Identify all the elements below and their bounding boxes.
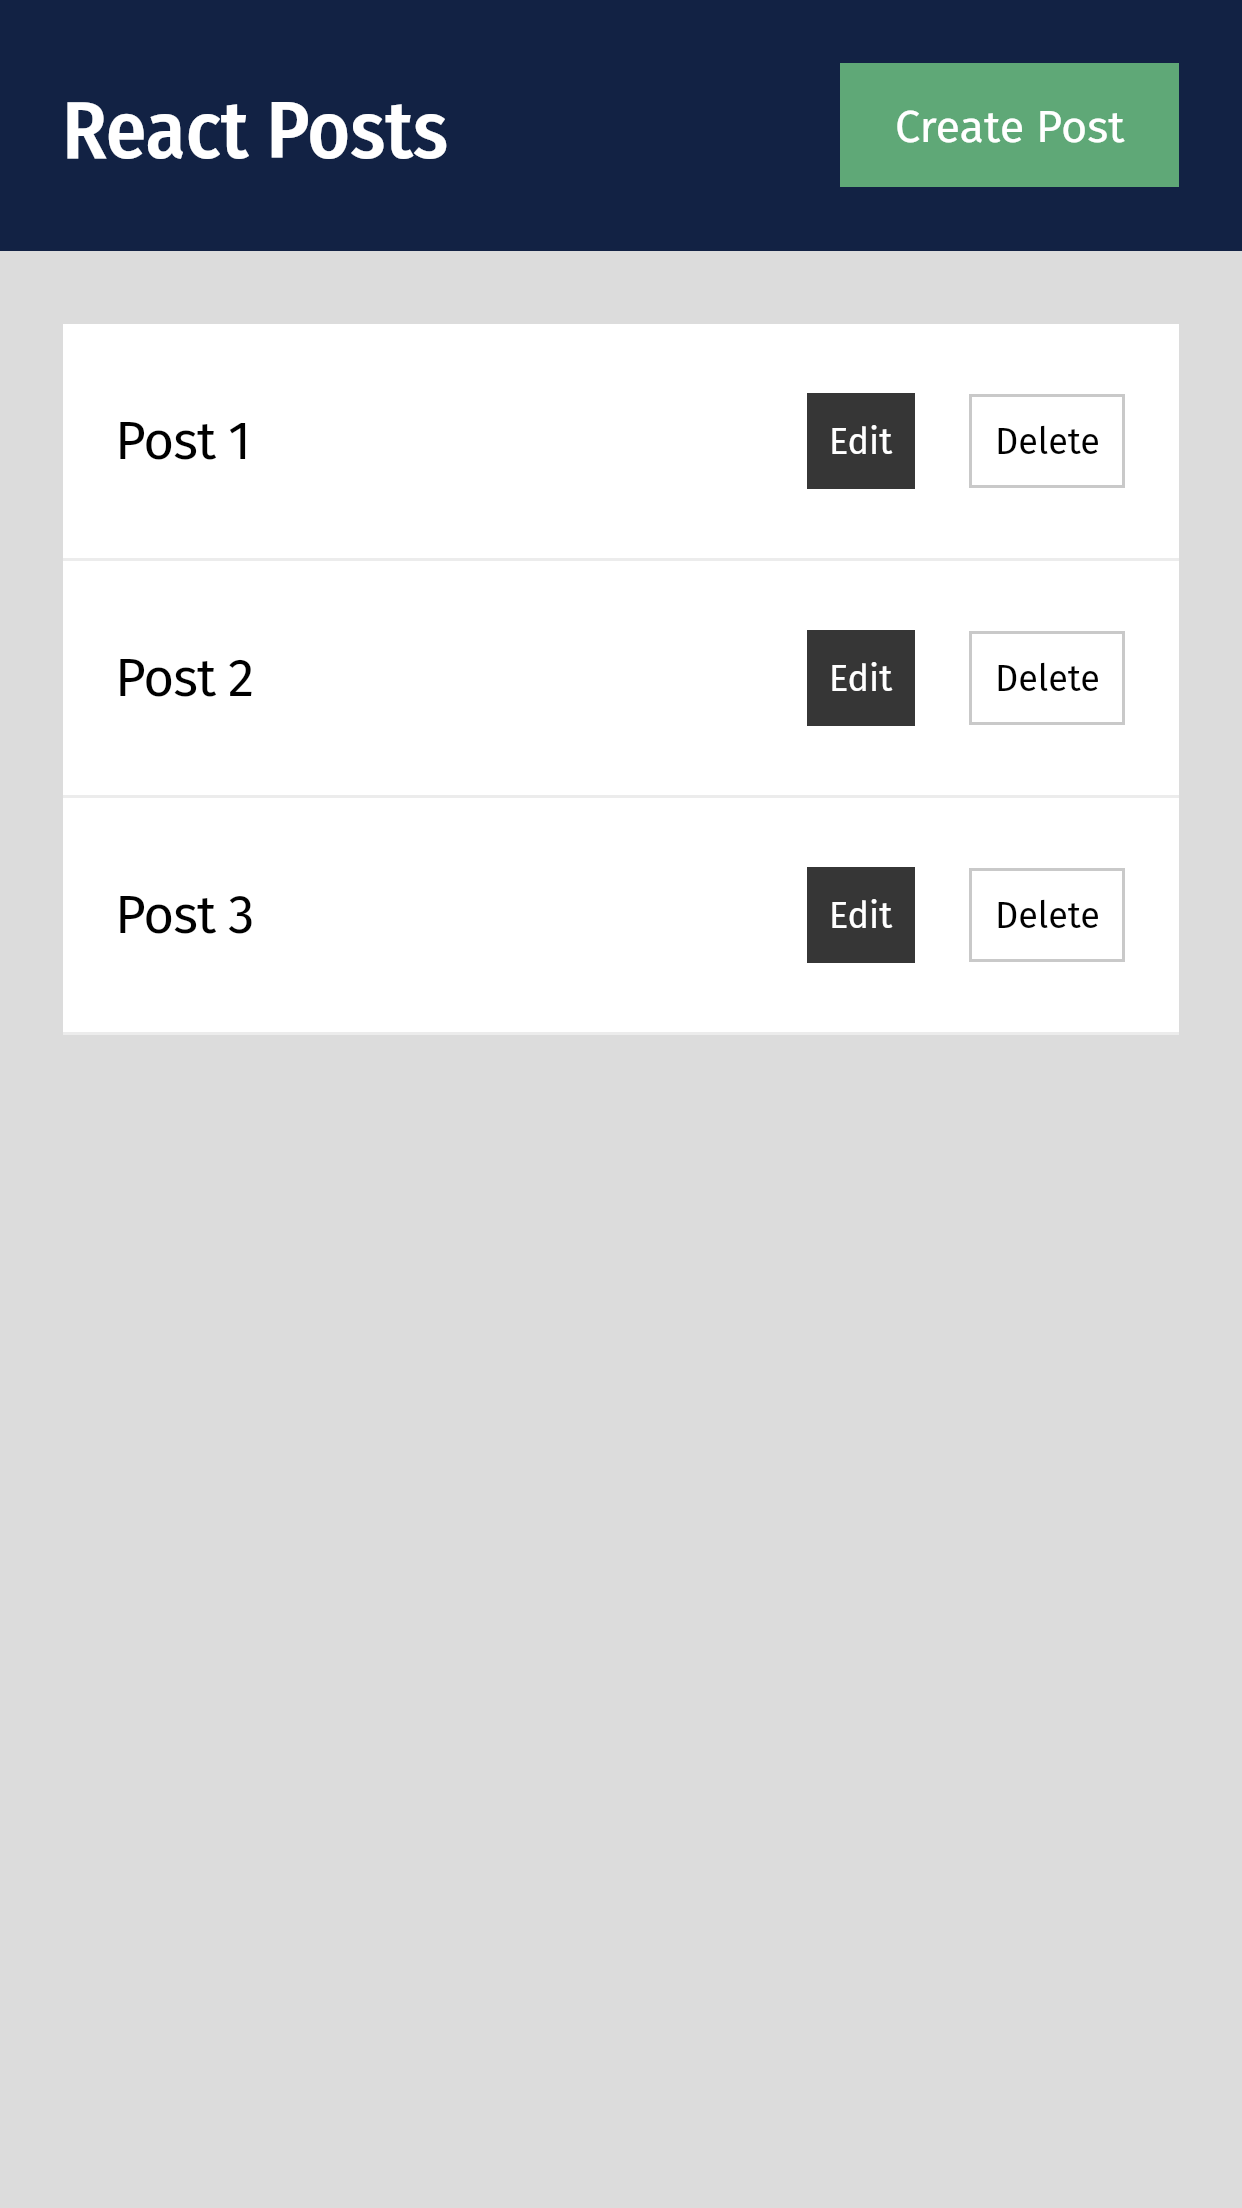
staticText: Post 3 xyxy=(115,883,254,947)
staticText: Delete xyxy=(995,657,1100,700)
staticText: Delete xyxy=(995,894,1100,937)
button[interactable]: Delete xyxy=(969,868,1125,962)
button[interactable]: Edit xyxy=(807,867,915,963)
button[interactable]: Delete xyxy=(969,631,1125,725)
staticText: Post 2 xyxy=(115,646,254,710)
staticText: Edit xyxy=(829,894,893,937)
staticText: React Posts xyxy=(62,82,449,179)
staticText: Edit xyxy=(829,420,893,463)
button[interactable]: Edit xyxy=(807,630,915,726)
button[interactable]: Create Post xyxy=(840,63,1179,187)
button[interactable]: Delete xyxy=(969,394,1125,488)
staticText: Create Post xyxy=(895,100,1125,154)
staticText: Edit xyxy=(829,657,893,700)
button[interactable]: Edit xyxy=(807,393,915,489)
staticText: Delete xyxy=(995,420,1100,463)
staticText: Post 1 xyxy=(115,409,251,473)
